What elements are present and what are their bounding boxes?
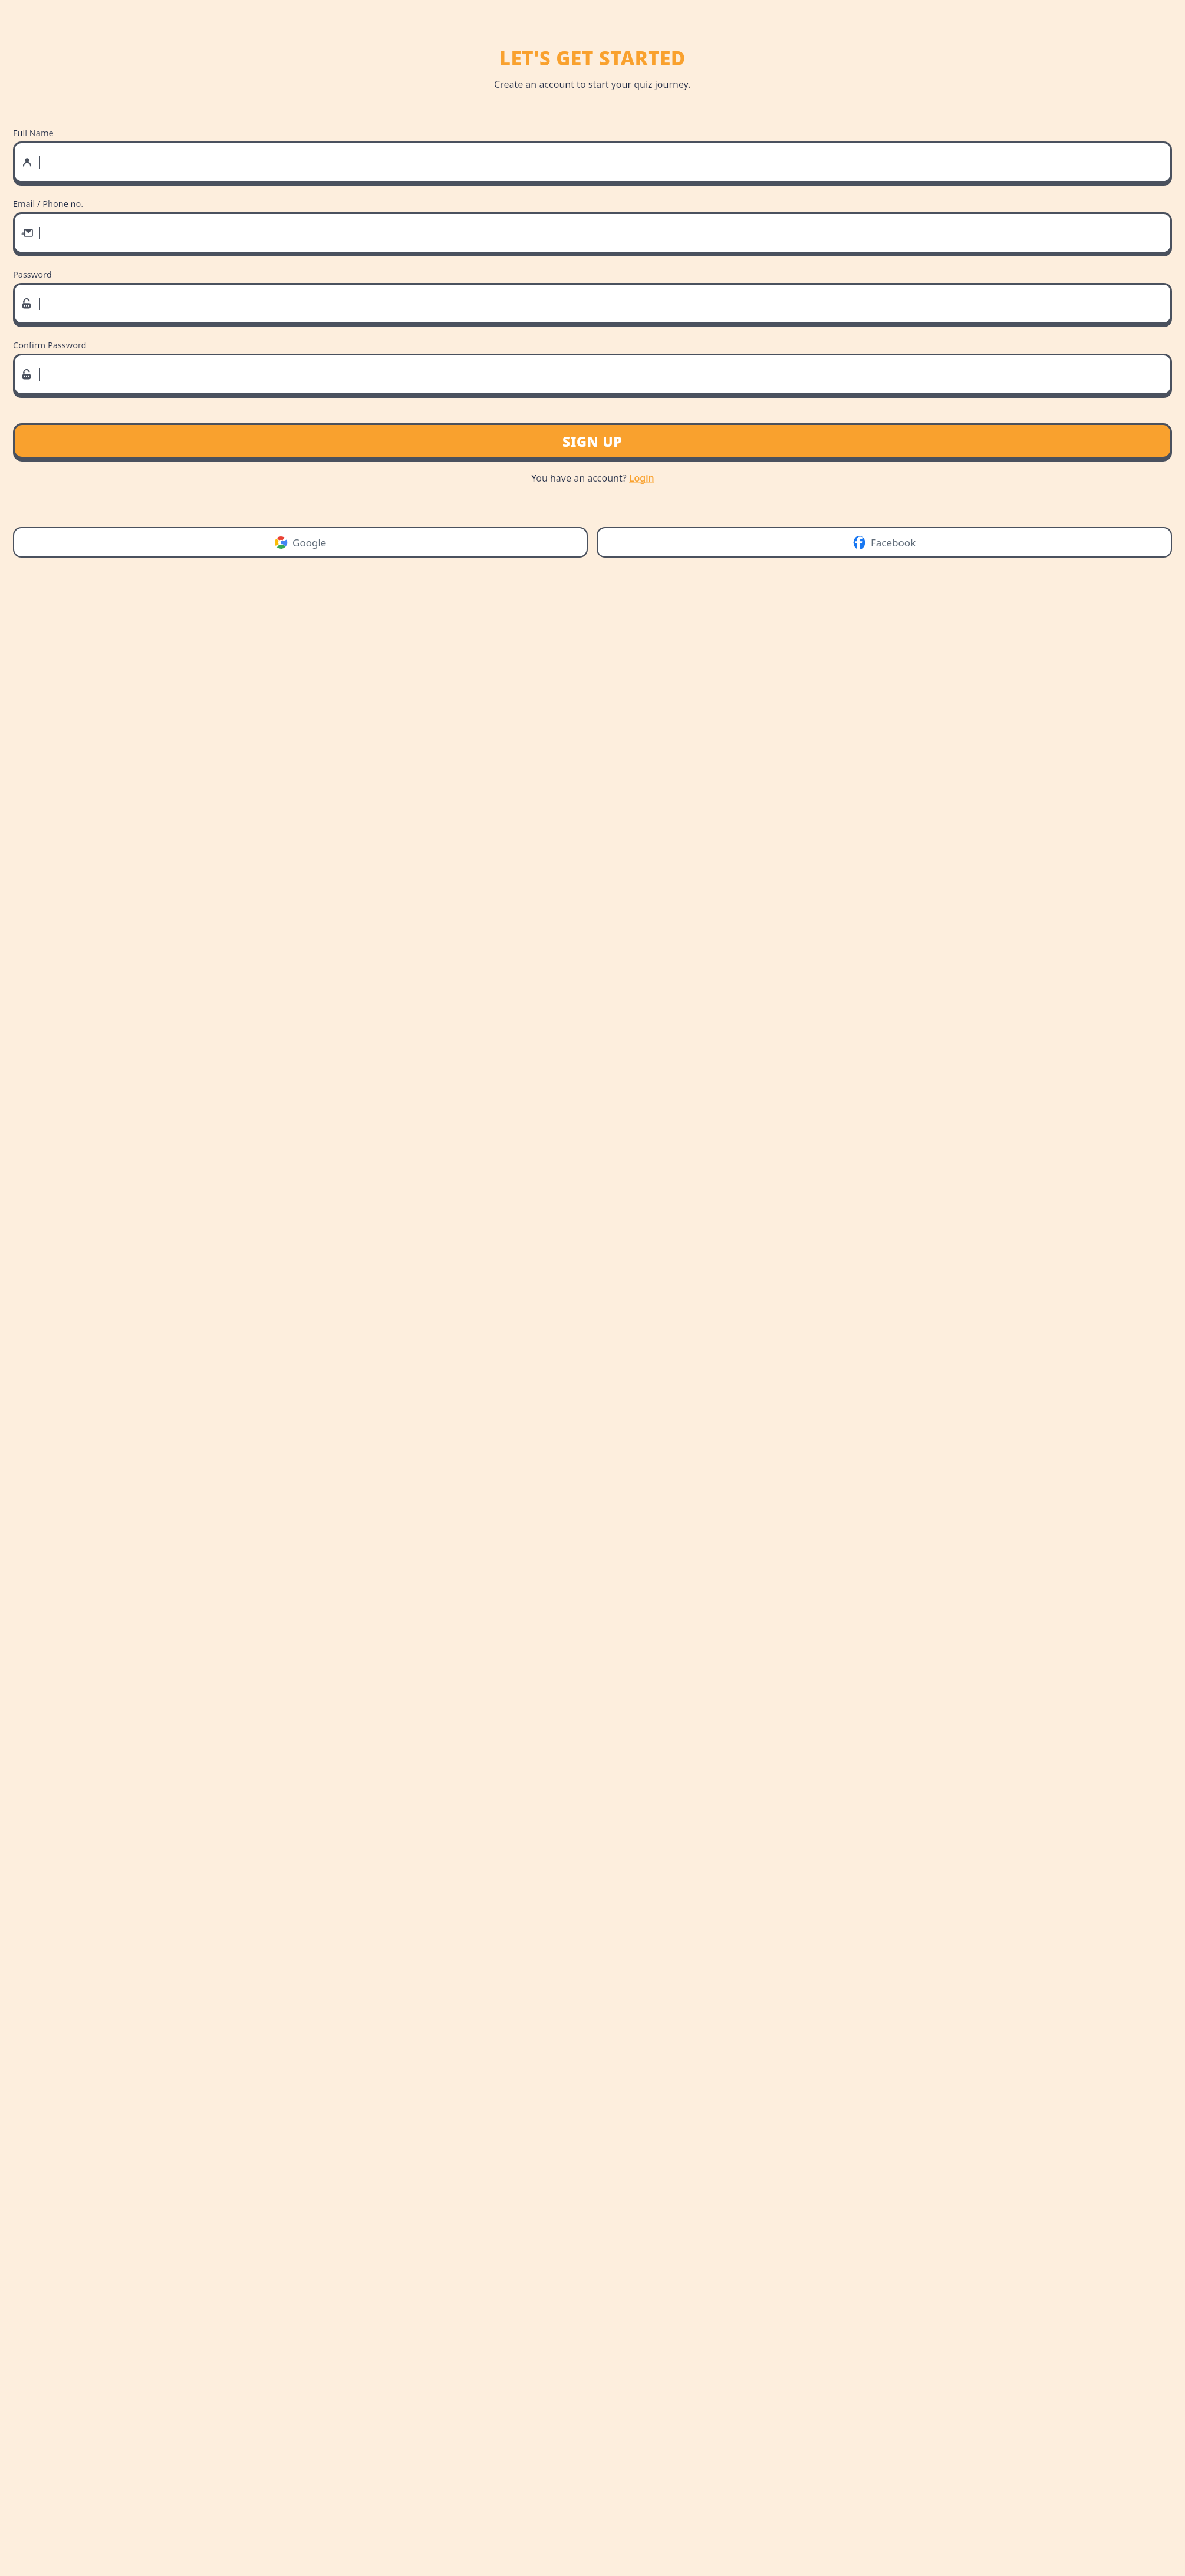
staticText: Email / Phone no. <box>13 197 84 209</box>
staticText: You have an account? <box>531 472 629 485</box>
staticText: Confirm Password <box>13 339 87 351</box>
button[interactable]: Google <box>14 528 587 556</box>
button[interactable]: Password <box>13 283 1172 327</box>
staticText: Create an account to start your quiz jou… <box>494 78 691 91</box>
staticText: LET'S GET STARTED <box>499 45 686 71</box>
staticText: Login <box>629 472 654 485</box>
other: Email <box>21 227 33 239</box>
button[interactable]: Login <box>629 472 654 485</box>
staticText: Full Name <box>13 127 54 139</box>
button[interactable]: Full Name <box>13 141 1172 186</box>
staticText: SIGN UP <box>562 432 623 450</box>
other: Person <box>21 156 33 168</box>
other: Confirm password <box>21 368 33 380</box>
button[interactable]: Email / Phone no. <box>13 212 1172 256</box>
staticText: Facebook <box>871 536 916 549</box>
button[interactable]: Facebook <box>598 528 1171 556</box>
staticText: Google <box>292 536 327 549</box>
other: Password <box>21 298 33 309</box>
staticText: Password <box>13 268 52 280</box>
button[interactable]: Confirm Password <box>13 354 1172 398</box>
button[interactable]: SIGN UP <box>13 423 1172 462</box>
